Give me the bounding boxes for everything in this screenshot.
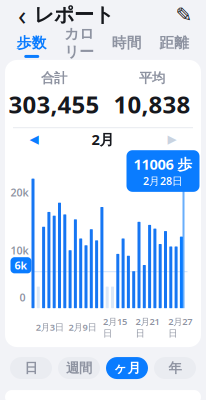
staticText: 2月21日: [136, 315, 160, 339]
staticText: 平均: [139, 70, 165, 86]
staticText: 2月3日: [36, 321, 64, 333]
staticText: 距離: [159, 34, 189, 52]
staticText: レポート: [34, 3, 114, 27]
staticText: 時間: [112, 34, 142, 52]
staticText: 合計: [41, 70, 67, 86]
staticText: ▶: [167, 132, 176, 146]
staticText: 10,838: [113, 88, 190, 120]
staticText: 日: [24, 360, 37, 376]
button[interactable]: 距離: [150, 34, 198, 58]
staticText: 6k: [14, 258, 27, 272]
button[interactable]: 週間: [58, 357, 100, 379]
button[interactable]: ヶ月: [106, 357, 148, 379]
staticText: 2月15日: [103, 315, 127, 339]
button[interactable]: 日: [10, 357, 52, 379]
staticText: カロリー: [64, 25, 94, 61]
button[interactable]: 時間: [103, 34, 150, 58]
staticText: ‹: [18, 0, 26, 33]
staticText: 2月27日: [168, 315, 192, 339]
staticText: 2月28日: [143, 174, 183, 188]
button[interactable]: 年: [154, 357, 196, 379]
button[interactable]: Next month: [157, 129, 187, 149]
staticText: 0: [19, 290, 25, 304]
staticText: 歩数: [17, 34, 47, 52]
staticText: 2月9日: [68, 321, 96, 333]
button[interactable]: Edit: [172, 1, 196, 29]
staticText: ◀: [29, 132, 38, 146]
button[interactable]: Back: [10, 1, 34, 29]
staticText: 年: [168, 360, 181, 376]
staticText: 303,455: [8, 88, 99, 120]
staticText: ヶ月: [113, 360, 140, 376]
staticText: 20k: [10, 185, 28, 199]
staticText: 10k: [10, 243, 28, 257]
staticText: 2月: [91, 129, 114, 149]
staticText: ✎: [175, 4, 192, 26]
button[interactable]: カロリー: [55, 25, 103, 67]
staticText: 週間: [66, 360, 92, 376]
staticText: 11006 歩: [133, 154, 192, 174]
button[interactable]: 歩数: [8, 34, 55, 58]
button[interactable]: Previous month: [19, 129, 49, 149]
